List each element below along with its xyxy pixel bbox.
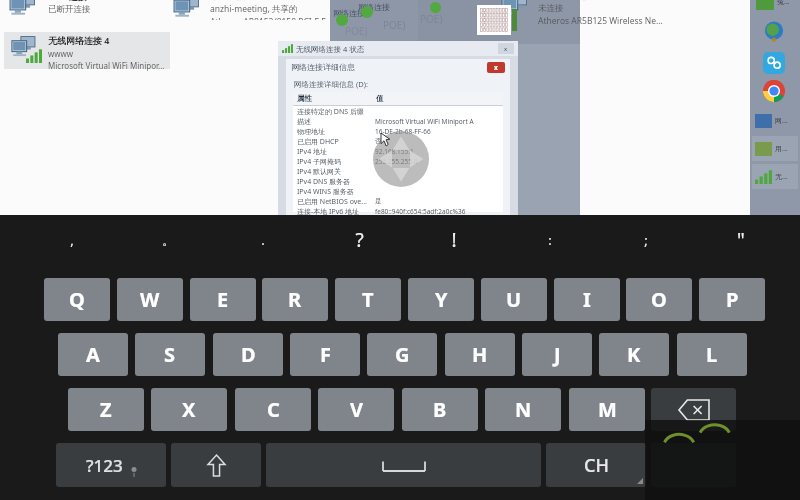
staticText: ! — [451, 227, 457, 253]
button[interactable]: : — [530, 223, 570, 257]
button[interactable]: ! — [434, 223, 474, 257]
staticText: K — [627, 341, 641, 368]
staticText: 网... — [775, 116, 788, 126]
staticText: POE) — [345, 24, 368, 38]
staticText: 连接-本地 IPv6 地址 — [297, 207, 360, 217]
staticText: E — [217, 286, 229, 313]
button[interactable]: T — [335, 278, 401, 321]
staticText: 网络连接详细信息 (D): — [294, 79, 368, 89]
button[interactable]: Close dialog — [487, 62, 505, 73]
button[interactable]: ? — [339, 223, 379, 257]
staticText: J — [554, 341, 561, 368]
button[interactable]: 用... — [752, 136, 798, 161]
staticText: 网络连接详细信息 — [291, 62, 355, 72]
button[interactable]: X — [151, 388, 227, 431]
button[interactable]: , — [52, 223, 92, 257]
button[interactable] — [763, 80, 785, 102]
staticText: G — [395, 341, 410, 368]
button[interactable]: R — [262, 278, 328, 321]
button[interactable]: W — [117, 278, 183, 321]
staticText: 92.168.155.1 — [375, 147, 414, 156]
staticText: x — [494, 63, 498, 72]
button[interactable]: Close — [498, 43, 514, 54]
button[interactable]: J — [522, 333, 592, 376]
staticText: C — [267, 396, 280, 423]
staticText: wwww — [48, 48, 74, 59]
button[interactable]: . — [243, 223, 283, 257]
staticText: P — [726, 286, 739, 313]
staticText: D — [241, 341, 256, 368]
staticText: 连接特定的 DNS 后缀 — [297, 107, 364, 117]
staticText: 用... — [775, 144, 788, 154]
button[interactable]: M — [569, 388, 645, 431]
button[interactable]: F — [290, 333, 360, 376]
staticText: X — [182, 396, 196, 423]
staticText: POE) — [383, 18, 406, 32]
staticText: B — [433, 396, 447, 423]
button[interactable]: P — [699, 278, 765, 321]
staticText: IPv4 默认网关 — [297, 167, 341, 177]
staticText: 无... — [775, 172, 788, 182]
staticText: ?123 — [86, 454, 123, 477]
button[interactable]: Q — [44, 278, 110, 321]
button[interactable]: U — [481, 278, 547, 321]
staticText: 无线网络连接 — [538, 0, 592, 1]
button[interactable]: H — [445, 333, 515, 376]
staticText: O — [651, 286, 667, 313]
button[interactable]: D — [213, 333, 283, 376]
button[interactable]: CH — [546, 443, 646, 487]
button[interactable]: V — [318, 388, 394, 431]
button[interactable]: I — [554, 278, 620, 321]
button[interactable]: Z — [68, 388, 144, 431]
button[interactable]: Keyboard — [477, 5, 511, 35]
button[interactable]: ?123 — [56, 443, 166, 487]
button[interactable]: 无线网络连接 4 — [4, 32, 170, 69]
staticText: Z — [100, 396, 112, 423]
button[interactable]: G — [367, 333, 437, 376]
button[interactable]: 。 — [148, 223, 188, 257]
button[interactable]: E — [190, 278, 256, 321]
button[interactable]: Shift — [171, 443, 261, 487]
button[interactable]: B — [402, 388, 478, 431]
staticText: Y — [435, 286, 448, 313]
button[interactable]: Backspace — [651, 388, 736, 431]
button[interactable]: Space — [266, 443, 541, 487]
staticText: , — [70, 231, 74, 249]
staticText: IPv4 地址 — [297, 147, 327, 157]
staticText: I — [583, 286, 591, 313]
staticText: 网络连接 — [333, 8, 365, 18]
staticText: Microsoft Virtual WiFi Minipor... — [48, 60, 165, 71]
button[interactable]: C — [235, 388, 311, 431]
staticText: 网络连接 — [358, 2, 390, 12]
staticText: VPN 连接 — [48, 0, 88, 2]
staticText: Microsoft Virtual WiFi Miniport A — [375, 117, 474, 126]
staticText: 无线网络连接 4 状态 — [296, 44, 365, 54]
button[interactable]: 无... — [752, 164, 798, 189]
staticText: Atheros AR5B125 Wireless Ne... — [538, 15, 663, 26]
button[interactable]: K — [599, 333, 669, 376]
button[interactable]: Y — [408, 278, 474, 321]
button[interactable]: O — [626, 278, 692, 321]
staticText: 255.255.255.0 — [375, 157, 418, 166]
staticText: 值 — [376, 94, 384, 103]
staticText: Atheros AR8152/8158 PCI-E F... — [210, 16, 333, 20]
button[interactable] — [763, 52, 785, 74]
button[interactable]: ; — [626, 223, 666, 257]
button[interactable]: 网... — [752, 108, 798, 133]
staticText: . — [261, 231, 265, 249]
button[interactable]: Directional pad — [373, 131, 429, 187]
staticText: 本地连接 — [210, 0, 246, 1]
button[interactable]: A — [58, 333, 128, 376]
button[interactable]: L — [677, 333, 747, 376]
button[interactable] — [764, 22, 784, 42]
staticText: 冤... — [777, 0, 790, 7]
staticText: ; — [644, 231, 648, 249]
staticText: T — [362, 286, 374, 313]
staticText: 属性 — [297, 94, 312, 103]
button[interactable]: N — [485, 388, 561, 431]
button[interactable]: " — [721, 223, 761, 257]
staticText: : — [548, 231, 552, 249]
button[interactable]: S — [135, 333, 205, 376]
